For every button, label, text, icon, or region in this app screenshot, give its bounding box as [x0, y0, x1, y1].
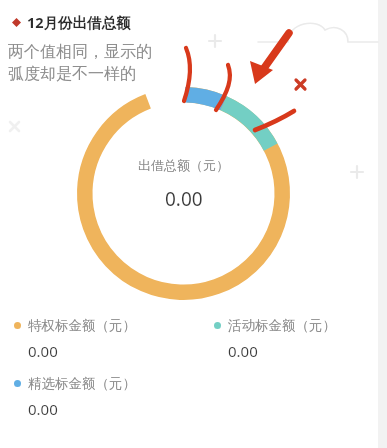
staticText: 0.00 [165, 186, 203, 212]
staticText: 两个值相同，显示的 弧度却是不一样的 [8, 42, 152, 83]
other: Annotation markings [0, 0, 378, 448]
button[interactable]: 精选标金额（元） [0, 375, 200, 419]
staticText: 精选标金额（元） [28, 375, 136, 392]
staticText: 0.00 [228, 341, 258, 361]
staticText: 出借总额（元） [138, 157, 229, 173]
button[interactable]: 活动标金额（元） [200, 317, 378, 361]
staticText: 0.00 [28, 399, 58, 419]
button[interactable]: 特权标金额（元） [0, 317, 200, 361]
staticText: 12月份出借总额 [27, 12, 131, 32]
button[interactable]: 12月份出借总额 [0, 9, 378, 35]
staticText: 0.00 [28, 341, 58, 361]
staticText: 活动标金额（元） [228, 317, 336, 334]
staticText: 特权标金额（元） [28, 317, 136, 334]
